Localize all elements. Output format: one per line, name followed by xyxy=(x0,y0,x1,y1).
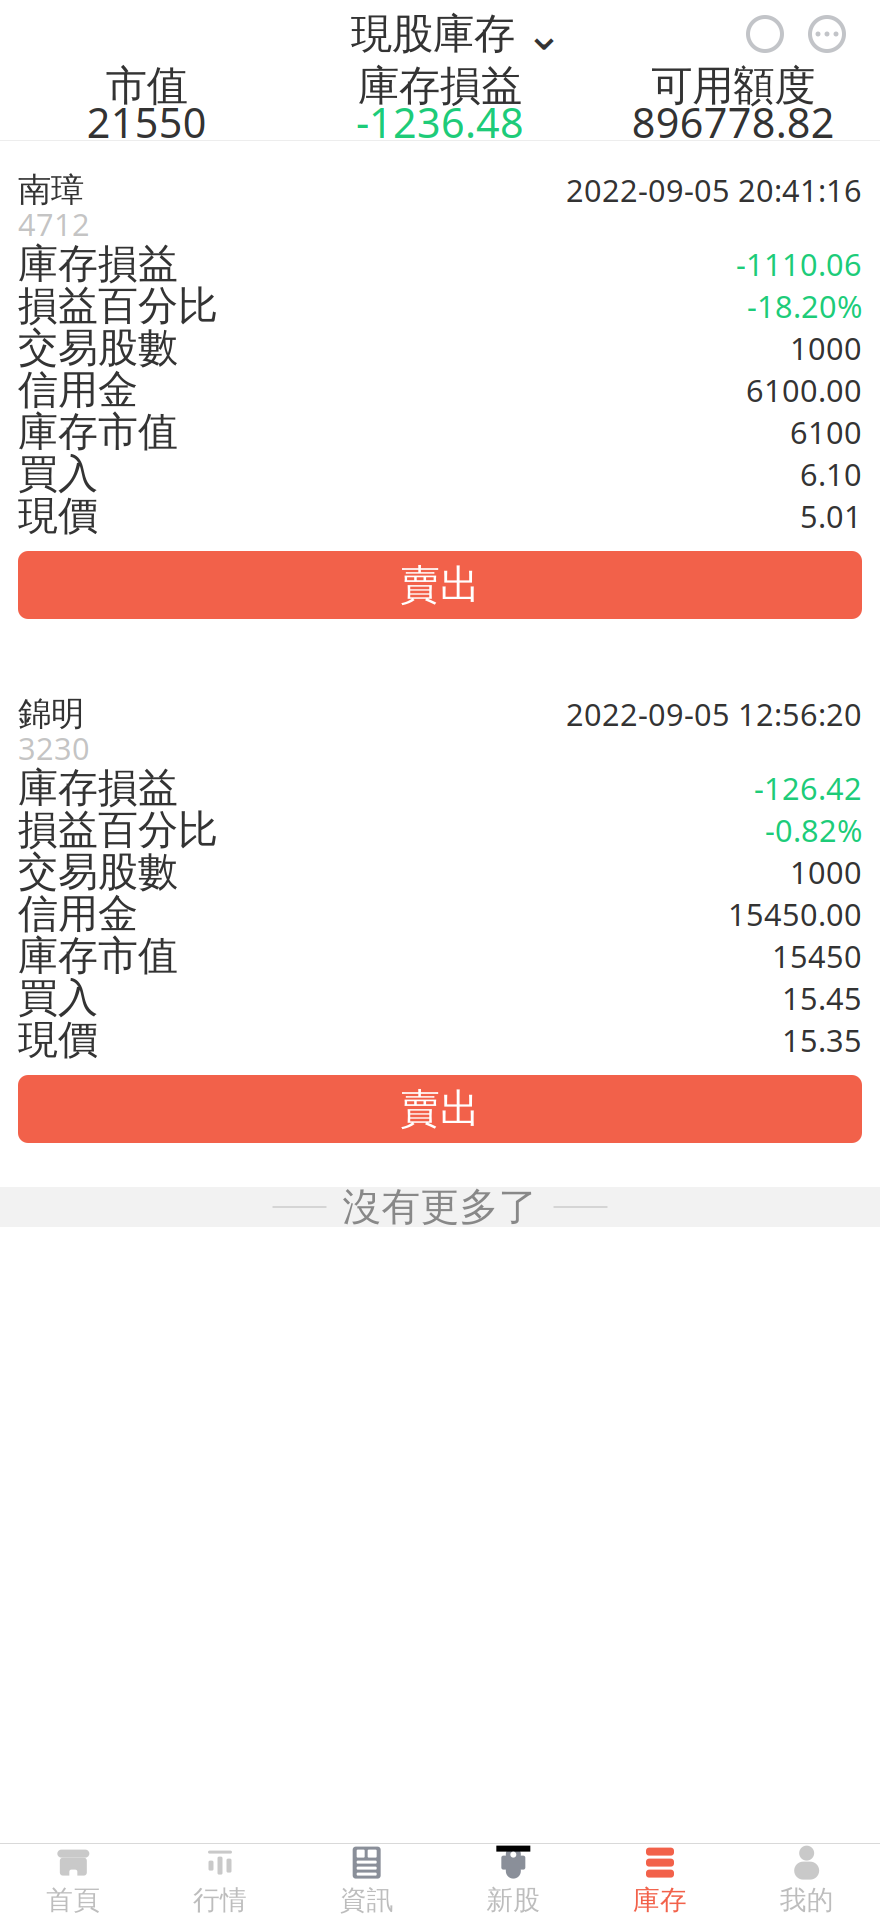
staticText: 3230 xyxy=(18,728,90,768)
staticText: 現價 xyxy=(18,1015,98,1064)
staticText: 2022-09-05 12:56:20 xyxy=(566,694,862,734)
button[interactable]: 訊息 xyxy=(796,3,858,65)
staticText: -1236.48 xyxy=(356,95,524,149)
staticText: 1000 xyxy=(790,852,862,892)
staticText: 損益百分比 xyxy=(18,805,218,854)
button[interactable]: 搜尋 xyxy=(734,3,796,65)
staticText: 21550 xyxy=(87,95,207,149)
staticText: 信用金 xyxy=(18,889,138,938)
staticText: 損益百分比 xyxy=(18,281,218,330)
staticText: 南璋 xyxy=(18,169,84,210)
button[interactable]: 首頁 xyxy=(0,1844,147,1918)
staticText: 新股 xyxy=(486,1884,540,1916)
staticText: 896778.82 xyxy=(632,95,835,149)
staticText: 1000 xyxy=(790,328,862,368)
staticText: 現價 xyxy=(18,491,98,540)
staticText: 庫存市值 xyxy=(18,407,178,456)
staticText: 庫存市值 xyxy=(18,931,178,980)
staticText: 現股庫存 xyxy=(351,9,515,59)
staticText: 6.10 xyxy=(800,454,862,494)
staticText: 交易股數 xyxy=(18,847,178,896)
staticText: 沒有更多了 xyxy=(342,1183,537,1231)
staticText: 2022-09-05 20:41:16 xyxy=(566,170,862,210)
button[interactable]: 行情 xyxy=(147,1844,293,1918)
staticText: -126.42 xyxy=(754,768,862,808)
button[interactable]: 現股庫存 xyxy=(341,3,573,65)
staticText: 可用額度 xyxy=(651,61,815,111)
button[interactable]: 新股 xyxy=(440,1844,587,1918)
button[interactable]: 賣出 xyxy=(18,1075,862,1143)
staticText: 15450 xyxy=(772,936,862,976)
staticText: -0.82% xyxy=(765,810,862,850)
staticText: 庫存損益 xyxy=(18,763,178,812)
staticText: 15450.00 xyxy=(728,894,862,934)
staticText: 交易股數 xyxy=(18,323,178,372)
staticText: 錦明 xyxy=(18,693,84,734)
staticText: 15.45 xyxy=(782,978,862,1018)
staticText: ⌄ xyxy=(525,8,563,60)
staticText: 庫存損益 xyxy=(18,239,178,288)
staticText: 賣出 xyxy=(400,560,480,609)
button[interactable]: 賣出 xyxy=(18,551,862,619)
button[interactable]: 資訊 xyxy=(293,1844,440,1918)
staticText: 買入 xyxy=(18,973,98,1022)
staticText: 買入 xyxy=(18,449,98,498)
staticText: 信用金 xyxy=(18,365,138,414)
button[interactable]: 我的 xyxy=(733,1844,880,1918)
staticText: 資訊 xyxy=(340,1884,394,1916)
button[interactable]: 庫存 xyxy=(587,1844,733,1918)
staticText: 我的 xyxy=(780,1884,834,1916)
staticText: 5.01 xyxy=(800,496,862,536)
staticText: 庫存 xyxy=(633,1884,687,1916)
staticText: 賣出 xyxy=(400,1084,480,1133)
staticText: 行情 xyxy=(193,1884,247,1916)
staticText: -1110.06 xyxy=(736,244,862,284)
staticText: -18.20% xyxy=(747,286,862,326)
staticText: 市值 xyxy=(106,61,188,111)
staticText: 庫存損益 xyxy=(358,61,522,111)
staticText: 首頁 xyxy=(46,1884,100,1916)
staticText: 15.35 xyxy=(782,1020,862,1060)
staticText: 6100.00 xyxy=(746,370,862,410)
staticText: 4712 xyxy=(18,204,90,244)
staticText: 6100 xyxy=(790,412,862,452)
